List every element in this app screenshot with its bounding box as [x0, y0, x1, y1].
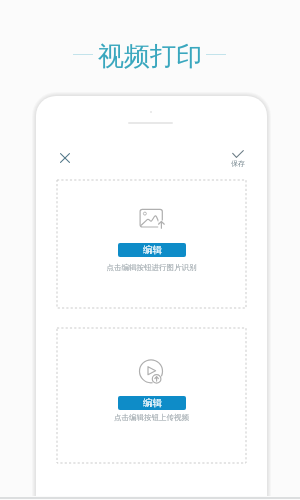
staticText: 保存: [219, 159, 257, 168]
button[interactable]: 编辑: [118, 396, 186, 410]
staticText: 编辑: [143, 397, 162, 409]
button[interactable]: 编辑: [118, 243, 186, 257]
button[interactable]: 保存: [219, 150, 257, 167]
button[interactable]: Close: [53, 146, 77, 170]
staticText: 点击编辑按钮上传视频: [57, 413, 246, 422]
staticText: 点击编辑按钮进行图片识别: [57, 263, 246, 272]
staticText: 编辑: [143, 244, 162, 256]
staticText: 视频打印: [98, 40, 202, 73]
